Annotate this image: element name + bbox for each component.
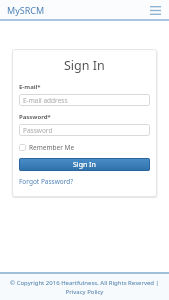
button[interactable]: E-mail address [19, 94, 150, 106]
button[interactable]: Menu [148, 3, 162, 17]
staticText: Password* [19, 113, 51, 121]
staticText: Sign In [64, 57, 105, 74]
staticText: E-mail* [19, 83, 41, 91]
staticText: © Copyright 2016 Heartfulness, All Right… [8, 279, 161, 296]
button[interactable]: Forgot Password? [19, 177, 74, 186]
staticText: Password [23, 126, 53, 135]
staticText: Sign In [73, 160, 96, 170]
staticText: Remember Me [29, 143, 75, 152]
button[interactable]: Sign In [19, 158, 150, 171]
button[interactable]: Password [19, 124, 150, 136]
button[interactable]: Remember Me [19, 143, 75, 152]
staticText: MySRCM [7, 4, 45, 16]
staticText: E-mail address [23, 96, 68, 105]
